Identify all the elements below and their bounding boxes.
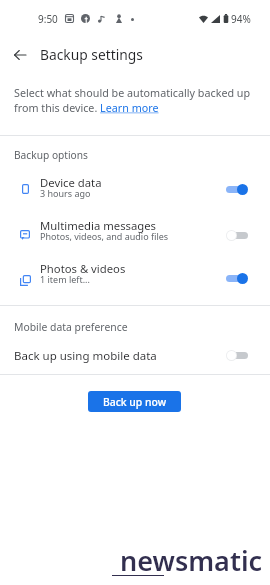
staticText: newsmatic bbox=[120, 542, 263, 579]
button[interactable]: Back up using mobile data bbox=[0, 341, 270, 370]
staticText: 1 item left... bbox=[40, 273, 90, 285]
button[interactable]: Back up now bbox=[88, 391, 181, 412]
staticText: Device data bbox=[40, 175, 102, 190]
staticText: Backup settings bbox=[40, 45, 143, 64]
staticText: Photos & videos bbox=[40, 261, 126, 276]
staticText: Back up now bbox=[103, 395, 167, 409]
staticText: 94% bbox=[231, 12, 251, 26]
staticText: Mobile data preference bbox=[14, 320, 128, 334]
staticText: Multimedia messages bbox=[40, 218, 157, 233]
button[interactable]: Off bbox=[226, 350, 248, 361]
staticText: Backup options bbox=[14, 148, 88, 162]
button[interactable]: Back bbox=[6, 41, 33, 68]
button[interactable]: Off bbox=[226, 230, 248, 241]
staticText: 3 hours ago bbox=[40, 187, 91, 199]
button[interactable]: Photos & videos bbox=[0, 256, 270, 294]
staticText: Back up using mobile data bbox=[14, 348, 157, 364]
staticText: Photos, videos, and audio files bbox=[40, 230, 169, 242]
staticText: Select what should be automatically back… bbox=[14, 86, 251, 115]
button[interactable]: On bbox=[226, 184, 248, 195]
button[interactable]: Device data bbox=[0, 170, 270, 208]
staticText: 9:50 bbox=[38, 12, 58, 26]
button[interactable]: On bbox=[226, 273, 248, 284]
button[interactable]: Multimedia messages bbox=[0, 213, 270, 251]
